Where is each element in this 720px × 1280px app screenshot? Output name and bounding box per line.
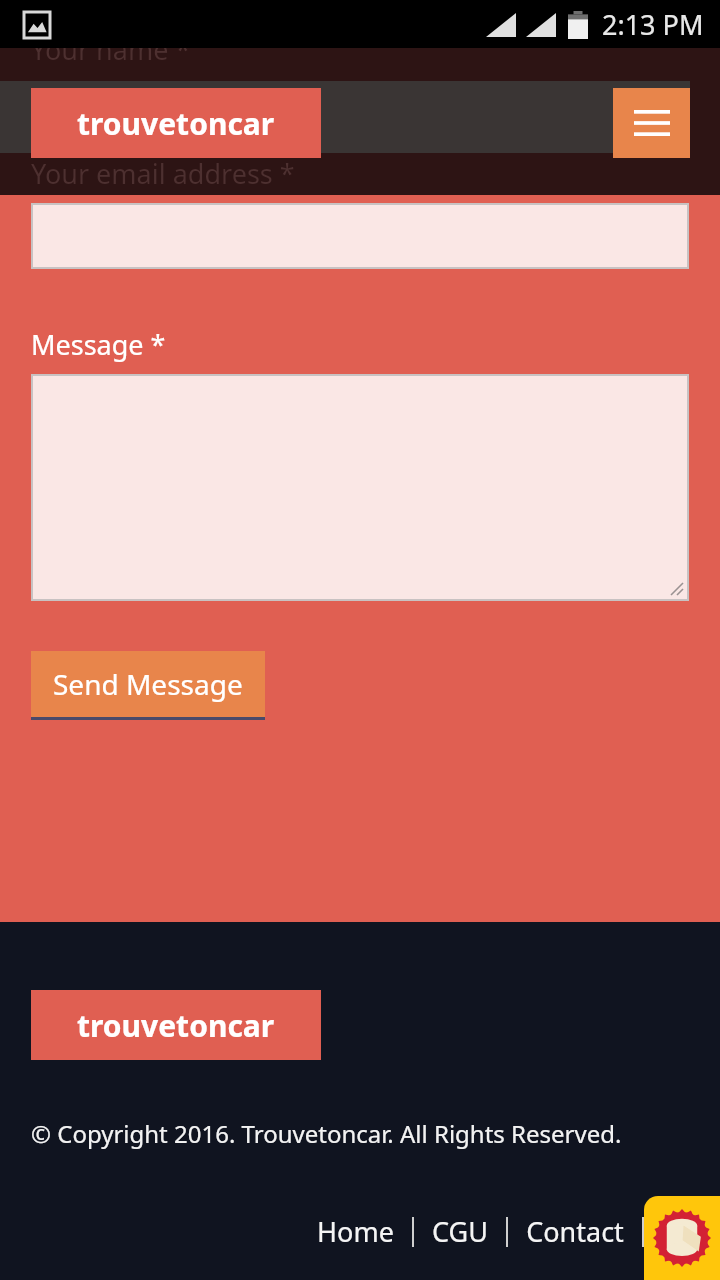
staticText: Contact: [526, 1213, 624, 1250]
staticText: Your email address *: [31, 155, 295, 192]
button[interactable]: Contact: [522, 1207, 628, 1256]
button[interactable]: Cookie settings: [644, 1196, 720, 1280]
staticText: Send Message: [53, 665, 243, 703]
staticText: Home: [317, 1213, 394, 1250]
staticText: © Copyright 2016. Trouvetoncar. All Righ…: [31, 1117, 622, 1150]
staticText: Message *: [31, 326, 166, 363]
button[interactable]: CGU: [428, 1207, 492, 1256]
button[interactable]: Send Message: [31, 651, 265, 721]
button[interactable]: Home: [313, 1207, 398, 1256]
staticText: Your name *: [31, 31, 191, 68]
staticText: CGU: [432, 1213, 488, 1250]
button[interactable]: trouvetoncar: [31, 88, 321, 158]
staticText: trouvetoncar: [77, 103, 275, 144]
button[interactable]: Menu: [613, 88, 690, 158]
staticText: trouvetoncar: [77, 1005, 275, 1046]
staticText: 2:13 PM: [602, 6, 704, 43]
staticText: A: [662, 1213, 680, 1250]
button[interactable]: A: [658, 1207, 684, 1256]
button[interactable]: trouvetoncar: [31, 990, 321, 1060]
